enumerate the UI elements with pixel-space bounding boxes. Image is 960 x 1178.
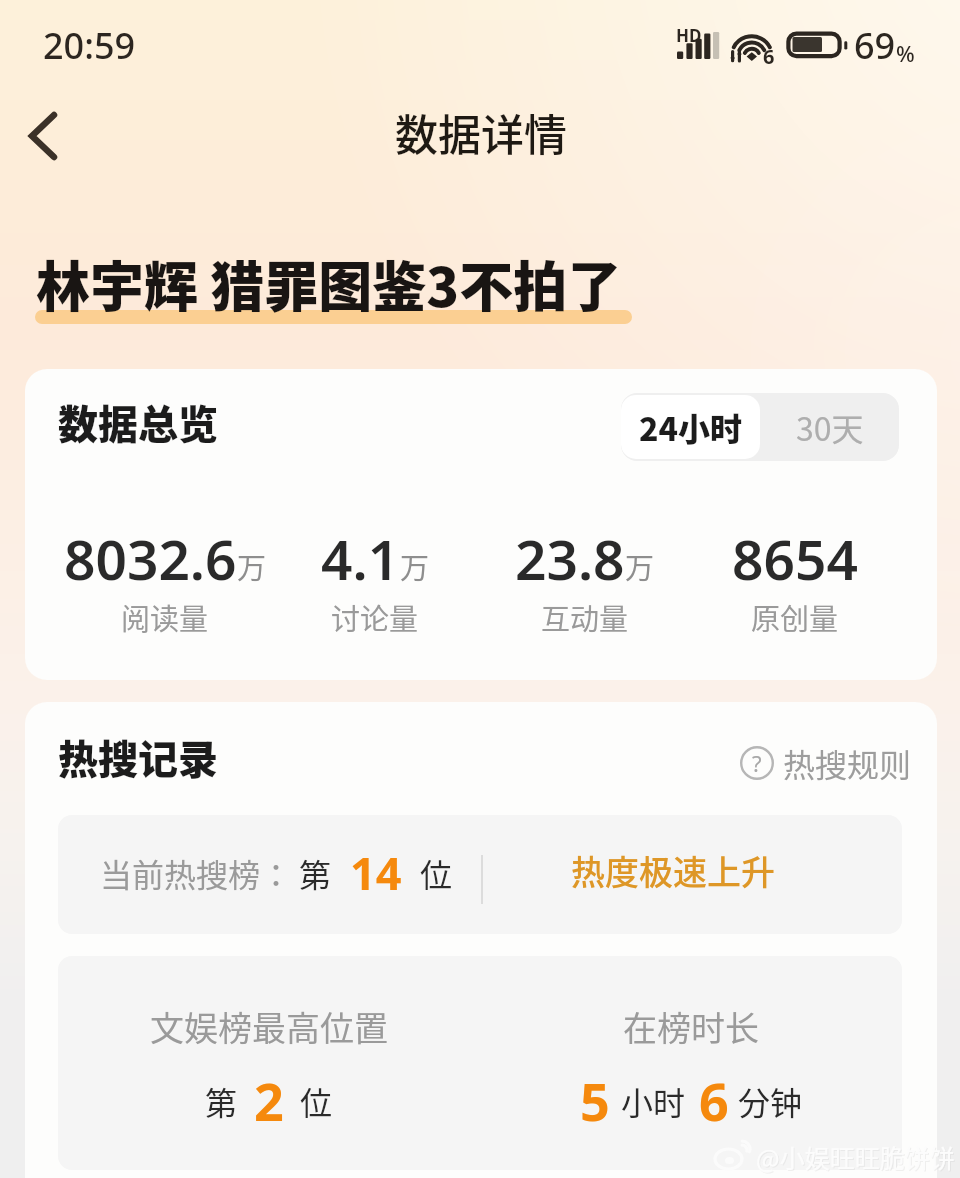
staticText: 6 [763,43,775,70]
staticText: 23.8 [515,521,625,596]
staticText: 24小时 [639,404,742,450]
staticText: 30天 [796,404,864,450]
staticText: 热搜记录 [58,728,218,786]
button[interactable]: 24小时 [621,395,760,459]
staticText: 第 [299,850,332,896]
staticText: @小娱旺旺脆饼饼 [757,1140,956,1176]
staticText: 8032.6 [64,521,237,596]
staticText: 数据详情 [395,101,567,163]
staticText: ? [752,748,762,778]
staticText: 阅读量 [121,596,209,638]
staticText: 14 [350,842,402,903]
staticText: 原创量 [751,596,839,638]
staticText: 热度极速上升 [571,846,775,895]
staticText: 4.1 [321,521,400,596]
staticText: 热搜规则 [783,740,912,786]
staticText: 69 [854,21,896,70]
staticText: 2 [254,1065,284,1136]
staticText: 在榜时长 [623,1002,759,1051]
button[interactable]: 30天 [760,393,899,461]
button[interactable]: ? [740,740,912,786]
staticText: 当前热搜榜： [100,850,293,896]
staticText: 位 [300,1078,333,1124]
staticText: % [896,38,915,68]
staticText: 讨论量 [331,596,419,638]
staticText: HD [676,24,702,47]
staticText: 5 [580,1065,610,1136]
staticText: 互动量 [541,596,629,638]
button[interactable]: Back [9,102,77,170]
staticText: 第 [205,1078,238,1124]
staticText: 8654 [732,521,858,596]
staticText: 万 [625,545,655,587]
staticText: @小娱旺旺脆饼饼 [756,1139,955,1175]
staticText: 文娱榜最高位置 [150,1002,388,1051]
staticText: 20:59 [43,21,136,70]
staticText: 万 [237,545,267,587]
staticText: 小时 [621,1078,686,1124]
staticText: 数据总览 [58,393,218,451]
staticText: 林宇辉 猎罪图鉴3不拍了 [36,244,622,322]
staticText: 6 [699,1065,729,1136]
staticText: 位 [420,850,453,896]
staticText: 分钟 [738,1078,803,1124]
staticText: 万 [400,545,430,587]
